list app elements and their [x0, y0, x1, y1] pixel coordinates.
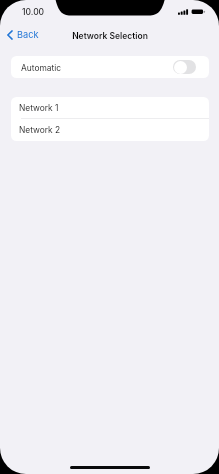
button[interactable]: Automatic [11, 56, 209, 78]
staticText: Network 2 [19, 125, 61, 135]
staticText: Network 1 [19, 103, 59, 113]
staticText: Back [17, 29, 39, 40]
staticText: 10.00 [22, 7, 45, 17]
staticText: Automatic [21, 63, 62, 73]
button[interactable]: Back [3, 27, 43, 42]
staticText: Network Selection [72, 31, 148, 41]
button[interactable]: Network 1 [11, 97, 209, 118]
button[interactable]: Automatic [173, 60, 196, 74]
button[interactable]: Network 2 [11, 119, 209, 140]
